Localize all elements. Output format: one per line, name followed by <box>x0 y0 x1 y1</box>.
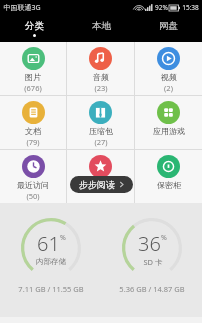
button[interactable]: 音频 <box>67 42 134 95</box>
button[interactable]: 61 <box>0 217 101 294</box>
staticText: (2) <box>164 83 173 93</box>
button[interactable]: 网盘 <box>135 15 202 42</box>
staticText: 61 <box>37 230 60 257</box>
staticText: (79) <box>26 137 40 147</box>
staticText: % <box>60 233 66 243</box>
staticText: 92% <box>155 3 168 12</box>
staticText: 本地 <box>92 20 111 32</box>
staticText: SD 卡 <box>143 257 163 267</box>
staticText: 7.11 GB / 11.55 GB <box>18 284 84 294</box>
staticText: 分类 <box>25 20 44 32</box>
staticText: 36 <box>138 230 161 257</box>
staticText: 压缩包 <box>89 126 113 136</box>
staticText: 步步阅读 <box>79 179 115 190</box>
staticText: 最近访问 <box>17 180 49 190</box>
button[interactable]: 步步阅读 <box>70 176 133 193</box>
staticText: (676) <box>24 83 42 93</box>
button[interactable]: 文档 <box>0 96 66 149</box>
staticText: 15:38 <box>182 3 199 12</box>
button[interactable]: 压缩包 <box>67 96 134 149</box>
staticText: % <box>161 233 167 243</box>
button[interactable]: 视频 <box>135 42 202 95</box>
button[interactable]: 保密柜 <box>135 150 202 203</box>
staticText: 保密柜 <box>157 180 181 190</box>
button[interactable]: 36 <box>101 217 202 294</box>
button[interactable]: 本地 <box>68 15 135 42</box>
staticText: 视频 <box>161 72 177 82</box>
staticText: 图片 <box>25 72 41 82</box>
button[interactable]: 应用游戏 <box>135 96 202 149</box>
button[interactable] <box>67 150 134 203</box>
staticText: 内部存储 <box>36 257 66 266</box>
staticText: 网盘 <box>159 20 178 32</box>
staticText: 5.36 GB / 14.87 GB <box>119 284 185 294</box>
button[interactable]: 图片 <box>0 42 66 95</box>
staticText: (23) <box>94 83 108 93</box>
staticText: 应用游戏 <box>153 126 185 136</box>
button[interactable]: 最近访问 <box>0 150 66 203</box>
button[interactable]: 分类 <box>0 15 68 42</box>
staticText: 中国联通3G <box>3 3 41 13</box>
staticText: (50) <box>26 191 40 201</box>
staticText: (27) <box>94 137 108 147</box>
staticText: 文档 <box>25 126 41 136</box>
staticText: 音频 <box>93 72 109 82</box>
